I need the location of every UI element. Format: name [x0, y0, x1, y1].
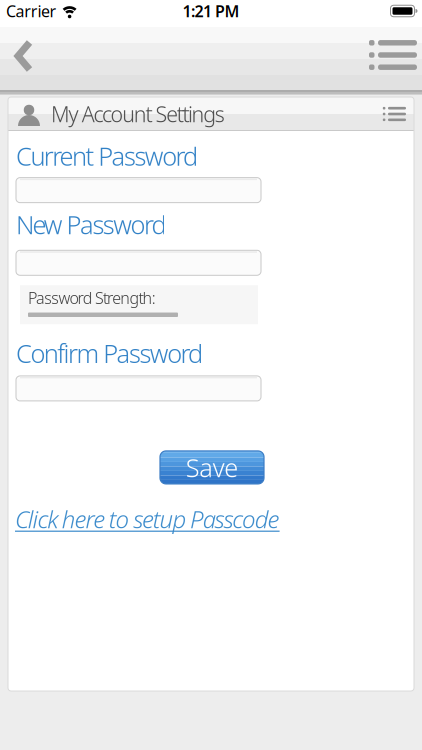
staticText: Password Strength: [28, 287, 156, 308]
staticText: Carrier [6, 0, 57, 22]
staticText: New Password [16, 208, 166, 241]
staticText: Click here to setup Passcode [15, 503, 280, 535]
staticText: Confirm Password [16, 336, 203, 370]
staticText: My Account Settings [51, 100, 225, 128]
button[interactable]: Save [159, 451, 263, 484]
staticText: 1:21 PM [182, 0, 239, 22]
staticText: Current Password [16, 139, 198, 173]
button[interactable]: Back [0, 26, 33, 90]
staticText: Save [186, 451, 238, 484]
button[interactable]: Menu [369, 29, 422, 88]
button[interactable]: Click here to setup Passcode [8, 503, 280, 535]
button[interactable]: Menu [383, 107, 406, 121]
